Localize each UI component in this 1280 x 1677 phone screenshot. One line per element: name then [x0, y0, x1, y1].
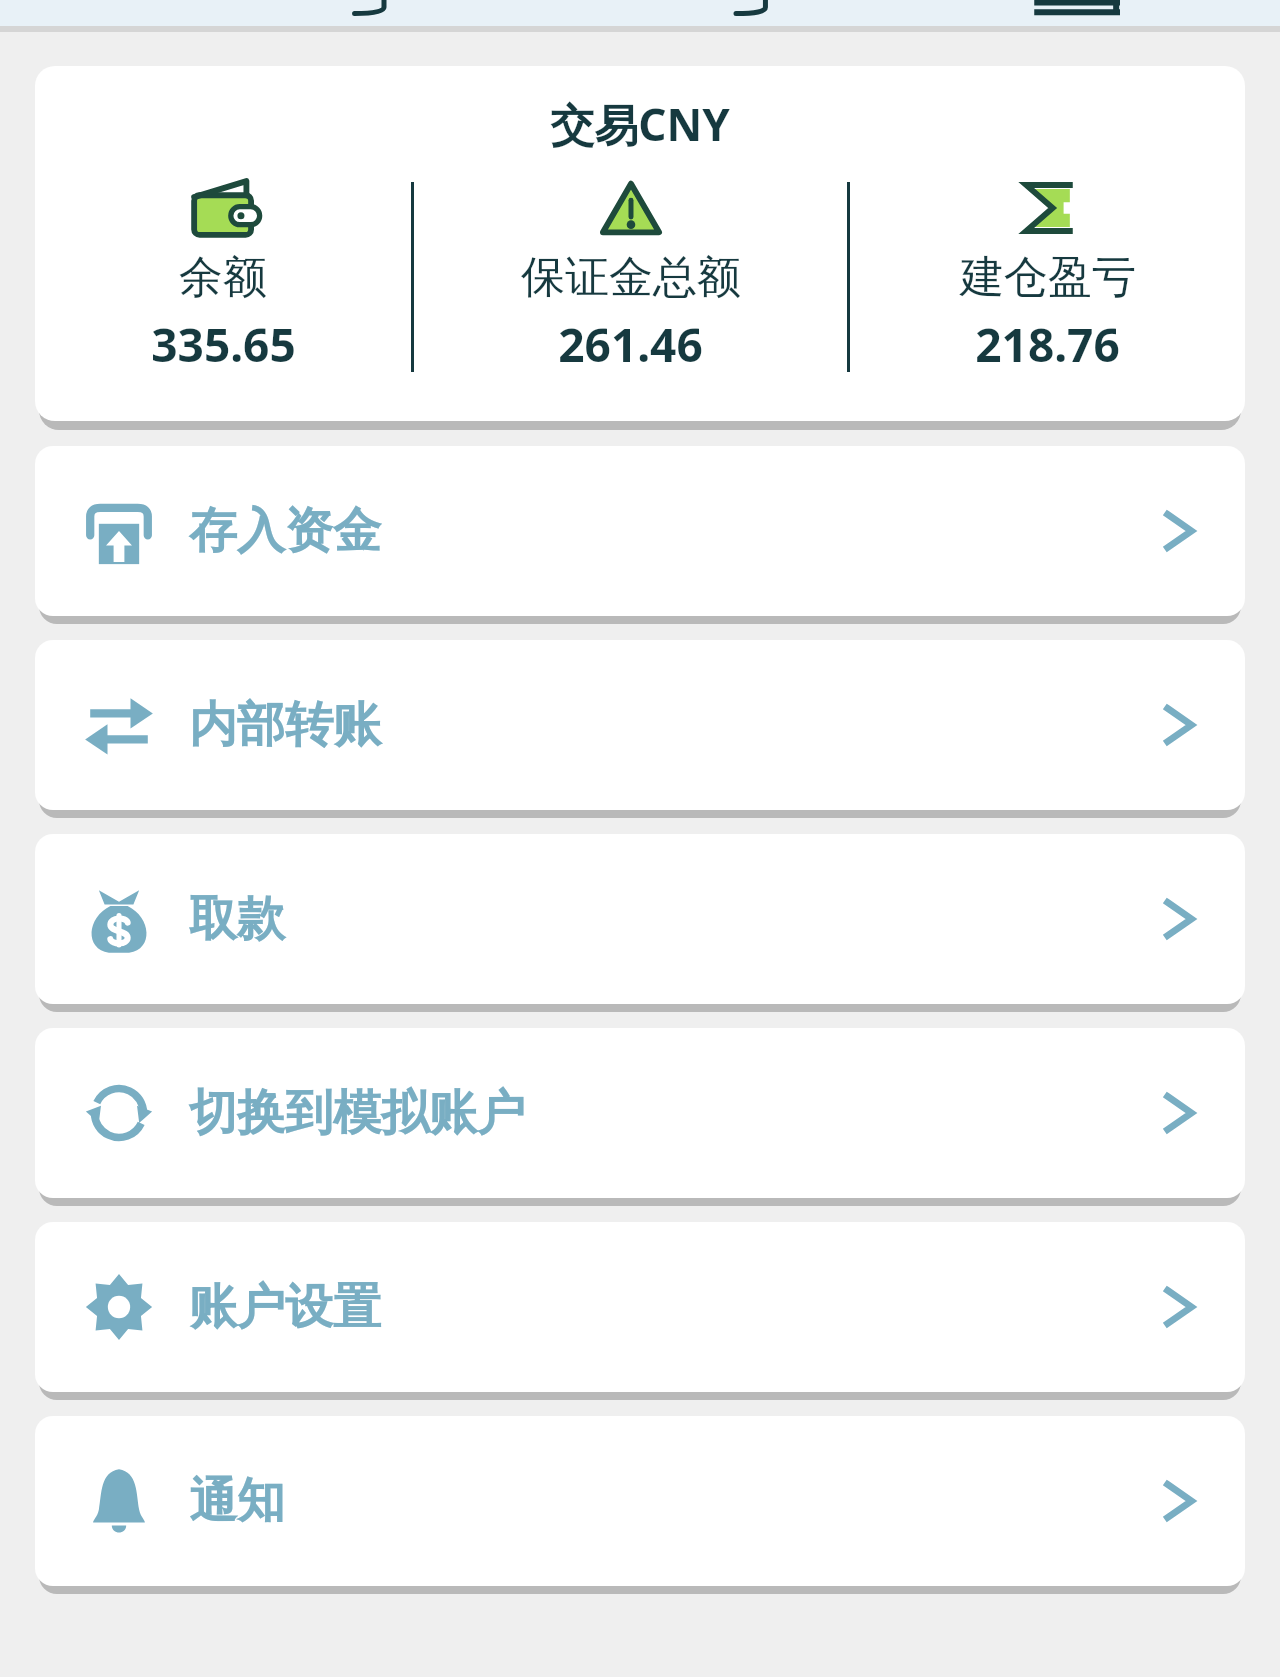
button[interactable]: 取款 [35, 834, 1245, 1004]
staticText: 切换到模拟账户 [189, 1083, 525, 1143]
staticText: 存入资金 [189, 501, 381, 561]
staticText: 保证金总额 [521, 250, 741, 305]
staticText: 218.76 [975, 313, 1120, 376]
button[interactable]: 交易CNY [35, 66, 1245, 421]
staticText: 335.65 [151, 313, 296, 376]
staticText: 交易CNY [550, 94, 730, 154]
staticText: 261.46 [558, 313, 703, 376]
staticText: 内部转账 [189, 695, 381, 755]
button[interactable]: 存入资金 [35, 446, 1245, 616]
button[interactable]: 通知 [35, 1416, 1245, 1586]
staticText: 余额 [179, 250, 267, 305]
staticText: 通知 [189, 1471, 285, 1531]
staticText: 账户设置 [189, 1277, 381, 1337]
button[interactable]: 切换到模拟账户 [35, 1028, 1245, 1198]
button[interactable]: 内部转账 [35, 640, 1245, 810]
staticText: 取款 [189, 889, 285, 949]
button[interactable]: 账户设置 [35, 1222, 1245, 1392]
staticText: 建仓盈亏 [960, 250, 1136, 305]
